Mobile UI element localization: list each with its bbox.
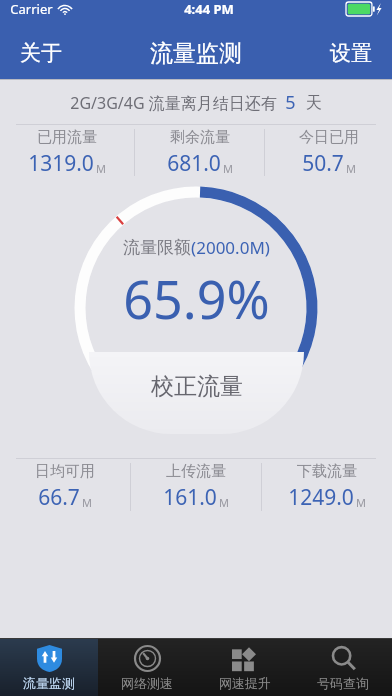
staticText: (2000.0M) (191, 236, 270, 259)
staticText: 日均可用 (35, 462, 95, 481)
staticText: 天 (306, 93, 322, 113)
staticText: 上传流量 (166, 462, 226, 481)
button[interactable]: 日均可用 (0, 459, 130, 515)
staticText: 50.7 (302, 149, 344, 178)
staticText: 2G/3G/4G 流量离月结日还有 (70, 92, 277, 114)
button[interactable]: 校正流量 (89, 352, 304, 434)
staticText: 网络测速 (121, 675, 173, 691)
staticText: 剩余流量 (170, 128, 230, 147)
button[interactable]: 设置 (324, 34, 378, 72)
staticText: 流量监测 (150, 39, 242, 68)
button[interactable]: 上传流量 (131, 459, 261, 515)
button[interactable]: 网络测速 (98, 639, 196, 696)
button[interactable]: 已用流量 (0, 125, 134, 180)
button[interactable]: 关于 (14, 34, 68, 72)
staticText: 设置 (330, 40, 372, 66)
staticText: 流量限额 (123, 237, 191, 258)
staticText: 已用流量 (37, 128, 97, 147)
staticText: 今日已用 (299, 128, 359, 147)
staticText: 号码查询 (317, 675, 369, 691)
staticText: 流量监测 (23, 675, 75, 691)
staticText: 1319.0 (28, 149, 94, 178)
staticText: M (346, 161, 356, 176)
staticText: 关于 (20, 40, 62, 66)
button[interactable]: 网速提升 (196, 639, 294, 696)
staticText: 66.7 (38, 483, 80, 512)
button[interactable]: 下载流量 (262, 459, 392, 515)
staticText: 下载流量 (297, 462, 357, 481)
other: 网络测速 (134, 645, 161, 672)
staticText: M (82, 495, 92, 510)
staticText: 网速提升 (219, 675, 271, 691)
button[interactable]: 流量监测 (0, 639, 98, 696)
staticText: 5 (285, 90, 296, 115)
staticText: 681.0 (167, 149, 221, 178)
staticText: 1249.0 (288, 483, 354, 512)
staticText: M (219, 495, 229, 510)
other: 流量监测 (37, 645, 62, 672)
other: 号码查询 (330, 645, 357, 672)
staticText: 161.0 (163, 483, 217, 512)
button[interactable]: 号码查询 (294, 639, 392, 696)
button[interactable]: 剩余流量 (135, 125, 264, 180)
other: 网速提升 (232, 645, 259, 672)
staticText: M (223, 161, 233, 176)
staticText: Carrier (10, 0, 53, 18)
staticText: 65.9% (123, 263, 270, 334)
button[interactable]: 今日已用 (265, 125, 392, 180)
staticText: 校正流量 (151, 372, 243, 401)
staticText: 4:44 PM (184, 0, 234, 18)
staticText: M (96, 161, 106, 176)
staticText: M (356, 495, 366, 510)
